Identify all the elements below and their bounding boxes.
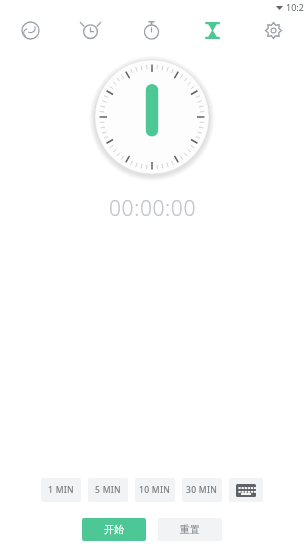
staticText: 10 MIN <box>139 484 171 496</box>
button[interactable]: Keyboard input <box>229 478 263 502</box>
staticText: 开始 <box>104 523 124 536</box>
button[interactable]: Timer <box>182 13 243 47</box>
button[interactable]: 30 MIN <box>182 478 222 502</box>
staticText: 00:00:00 <box>109 194 196 223</box>
button[interactable]: Settings <box>243 13 304 47</box>
staticText: 重置 <box>180 523 200 536</box>
staticText: 5 MIN <box>95 484 121 496</box>
button[interactable]: 开始 <box>82 518 146 541</box>
staticText: 30 MIN <box>186 484 218 496</box>
button[interactable]: Stopwatch <box>121 13 182 47</box>
button[interactable]: 1 MIN <box>41 478 81 502</box>
button[interactable]: World clock <box>0 13 60 47</box>
staticText: 10:2 <box>286 1 304 13</box>
button[interactable]: Alarm <box>60 13 121 47</box>
button[interactable]: 重置 <box>158 518 222 541</box>
button[interactable]: 5 MIN <box>88 478 128 502</box>
button[interactable]: 10 MIN <box>135 478 175 502</box>
staticText: 1 MIN <box>48 484 74 496</box>
